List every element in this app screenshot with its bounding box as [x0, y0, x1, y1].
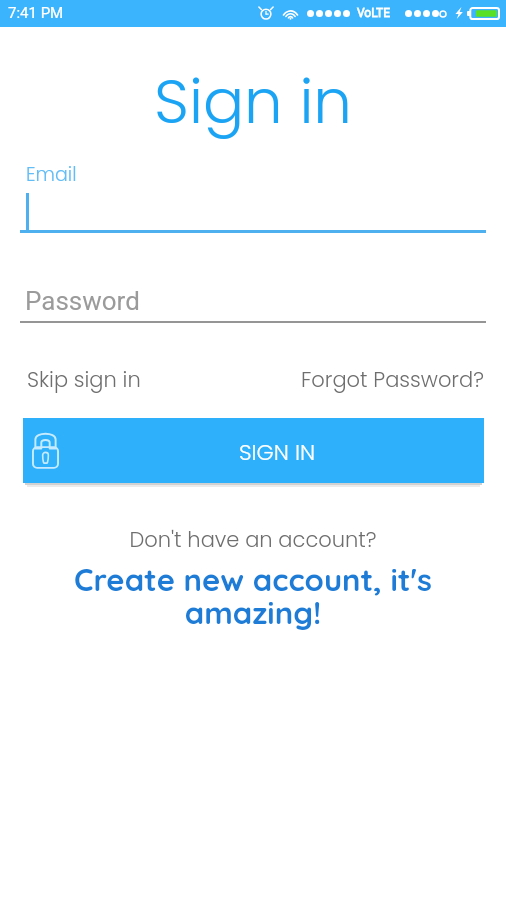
staticText: 7:41 PM: [8, 4, 64, 22]
button[interactable]: Create new account, it's amazing!: [55, 560, 451, 632]
staticText: Password: [25, 286, 140, 316]
staticText: Sign in: [0, 59, 506, 144]
button[interactable]: Skip sign in: [27, 365, 141, 394]
staticText: SIGN IN: [70, 437, 484, 468]
staticText: Email: [26, 161, 77, 188]
staticText: Don't have an account?: [0, 525, 506, 554]
button[interactable]: Secure sign in: [23, 418, 484, 483]
other: Secure sign in: [32, 431, 59, 469]
button[interactable]: Forgot Password?: [301, 365, 484, 394]
staticText: VoLTE: [357, 6, 391, 20]
